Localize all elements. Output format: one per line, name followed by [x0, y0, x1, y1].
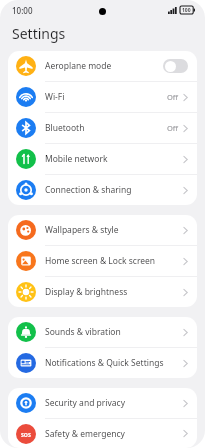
button[interactable]: Security and privacy — [8, 388, 197, 418]
staticText: Wallpapers & style — [45, 224, 119, 236]
staticText: Aeroplane mode — [45, 60, 112, 72]
staticText: Notifications & Quick Settings — [45, 357, 164, 369]
staticText: Settings — [12, 24, 66, 43]
staticText: 100 — [182, 7, 191, 14]
button[interactable]: Aeroplane mode — [8, 51, 197, 81]
staticText: Mobile network — [45, 153, 108, 165]
staticText: SOS — [21, 431, 31, 438]
staticText: Off — [167, 92, 179, 102]
staticText: Security and privacy — [45, 397, 126, 409]
button[interactable]: Wallpapers & style — [8, 215, 197, 245]
button[interactable]: Sounds & vibration — [8, 317, 197, 347]
staticText: Safety & emergency — [45, 428, 125, 440]
button[interactable]: Mobile network — [8, 144, 197, 174]
button[interactable]: Bluetooth — [8, 113, 197, 143]
staticText: Display & brightness — [45, 286, 128, 298]
button[interactable]: Home screen & Lock screen — [8, 246, 197, 276]
button[interactable]: Display & brightness — [8, 277, 197, 307]
button[interactable]: Wi-Fi — [8, 82, 197, 112]
button[interactable]: Notifications & Quick Settings — [8, 348, 197, 378]
button[interactable]: SOS — [8, 419, 197, 448]
button[interactable]: Aeroplane mode toggle — [163, 59, 188, 73]
staticText: 10:00 — [12, 5, 33, 16]
staticText: Sounds & vibration — [45, 326, 121, 338]
staticText: Connection & sharing — [45, 184, 132, 196]
button[interactable]: Connection & sharing — [8, 175, 197, 205]
staticText: Off — [167, 123, 179, 133]
staticText: Wi-Fi — [45, 91, 65, 103]
staticText: Home screen & Lock screen — [45, 255, 156, 267]
staticText: Bluetooth — [45, 122, 85, 134]
